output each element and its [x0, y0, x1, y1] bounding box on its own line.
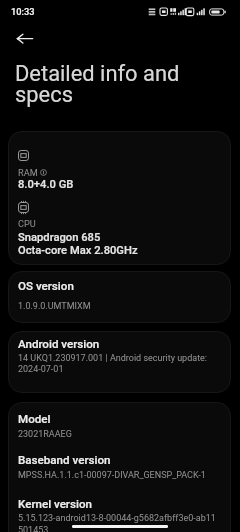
staticText: 8.0+4.0 GB [18, 178, 74, 191]
staticText: 501453 [18, 525, 49, 532]
staticText: Kernel version [18, 497, 92, 511]
button[interactable]: RAM [8, 131, 231, 265]
button[interactable]: Back [5, 26, 30, 51]
staticText: Octa-core Max 2.80GHz [18, 244, 138, 257]
staticText: specs [15, 82, 73, 108]
staticText: Android version [18, 337, 100, 351]
staticText: OS version [18, 279, 74, 293]
staticText: 1.0.9.0.UMTMIXM [18, 301, 91, 312]
staticText: Snapdragon 685 [18, 231, 101, 244]
staticText: 2024-07-01 [18, 364, 64, 375]
staticText: Baseband version [18, 453, 111, 467]
staticText: 23021RAAEG [18, 429, 72, 440]
staticText: CPU [18, 218, 36, 229]
staticText: 5.15.123-android13-8-00044-g5682afbff3e0… [18, 513, 216, 524]
staticText: 10:33 [11, 6, 35, 17]
button[interactable]: OS version [8, 271, 231, 323]
staticText: MPSS.HA.1.1.c1-00097-DIVAR_GENSP_PACK-1 [18, 470, 206, 481]
staticText: RAM [18, 167, 38, 178]
staticText: 14 UKQ1.230917.001 | Android security up… [18, 353, 208, 364]
button[interactable]: Android version [8, 331, 231, 393]
staticText: Detailed info and [15, 61, 180, 87]
staticText: Model [18, 412, 51, 426]
button[interactable]: Model [8, 402, 231, 532]
